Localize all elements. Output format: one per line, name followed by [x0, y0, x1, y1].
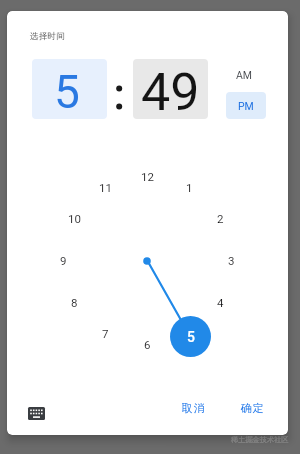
button[interactable]: 2: [208, 209, 232, 227]
staticText: 49: [141, 62, 200, 119]
button[interactable]: 8: [62, 293, 86, 311]
staticText: 稀土掘金技术社区: [231, 435, 289, 444]
button[interactable]: 3: [219, 251, 243, 269]
button[interactable]: 4: [208, 293, 232, 311]
button[interactable]: 7: [93, 324, 117, 342]
staticText: 3: [228, 254, 235, 267]
button[interactable]: PM: [226, 92, 266, 119]
button[interactable]: [24, 401, 48, 425]
staticText: 7: [102, 327, 109, 340]
staticText: 5: [186, 327, 193, 340]
button[interactable]: 确定: [228, 396, 276, 420]
button[interactable]: 6: [135, 335, 159, 353]
staticText: 确定: [240, 401, 264, 415]
staticText: 选择时间: [30, 31, 66, 42]
staticText: 11: [99, 181, 112, 194]
staticText: 6: [144, 338, 151, 351]
staticText: 5: [54, 65, 80, 119]
staticText: 1: [186, 181, 193, 194]
button[interactable]: 5: [32, 59, 107, 119]
button[interactable]: 49: [133, 59, 208, 119]
staticText: 5: [187, 329, 195, 345]
staticText: 8: [71, 296, 78, 309]
staticText: 9: [60, 254, 67, 267]
staticText: PM: [238, 100, 254, 112]
staticText: 4: [217, 296, 224, 309]
staticText: 2: [217, 212, 224, 225]
staticText: 12: [141, 170, 154, 183]
button[interactable]: 5: [177, 324, 201, 342]
button[interactable]: AM: [224, 66, 264, 84]
button[interactable]: 11: [93, 178, 117, 196]
button[interactable]: 12: [135, 167, 159, 185]
button[interactable]: 9: [51, 251, 75, 269]
button[interactable]: 10: [62, 209, 86, 227]
button[interactable]: 取消: [169, 396, 217, 420]
staticText: AM: [236, 69, 253, 81]
staticText: 取消: [181, 401, 205, 415]
button[interactable]: 1: [177, 178, 201, 196]
staticText: 10: [68, 212, 81, 225]
